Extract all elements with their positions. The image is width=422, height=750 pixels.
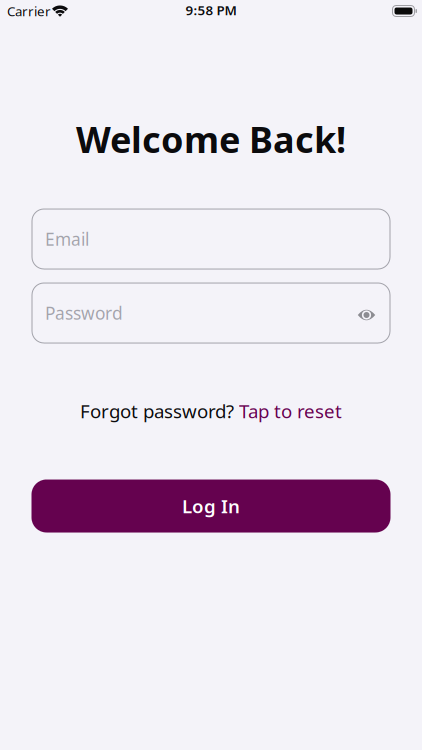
- staticText: Email: [45, 227, 89, 250]
- staticText: Tap to reset: [239, 399, 342, 423]
- staticText: Log In: [182, 494, 240, 518]
- staticText: Welcome Back!: [76, 115, 346, 163]
- secureTextField[interactable]: Password: [45, 301, 346, 324]
- staticText: Password: [45, 301, 123, 324]
- staticText: Password: [45, 301, 123, 324]
- textField[interactable]: Email: [45, 227, 390, 250]
- staticText: 9:58 PM: [185, 1, 236, 19]
- button[interactable]: Tap to reset: [239, 399, 342, 423]
- staticText: Carrier: [7, 2, 51, 20]
- button[interactable]: Show password: [351, 300, 381, 330]
- staticText: Email: [45, 227, 89, 250]
- staticText: Forgot password?: [80, 399, 239, 423]
- button[interactable]: Log In: [31, 479, 390, 532]
